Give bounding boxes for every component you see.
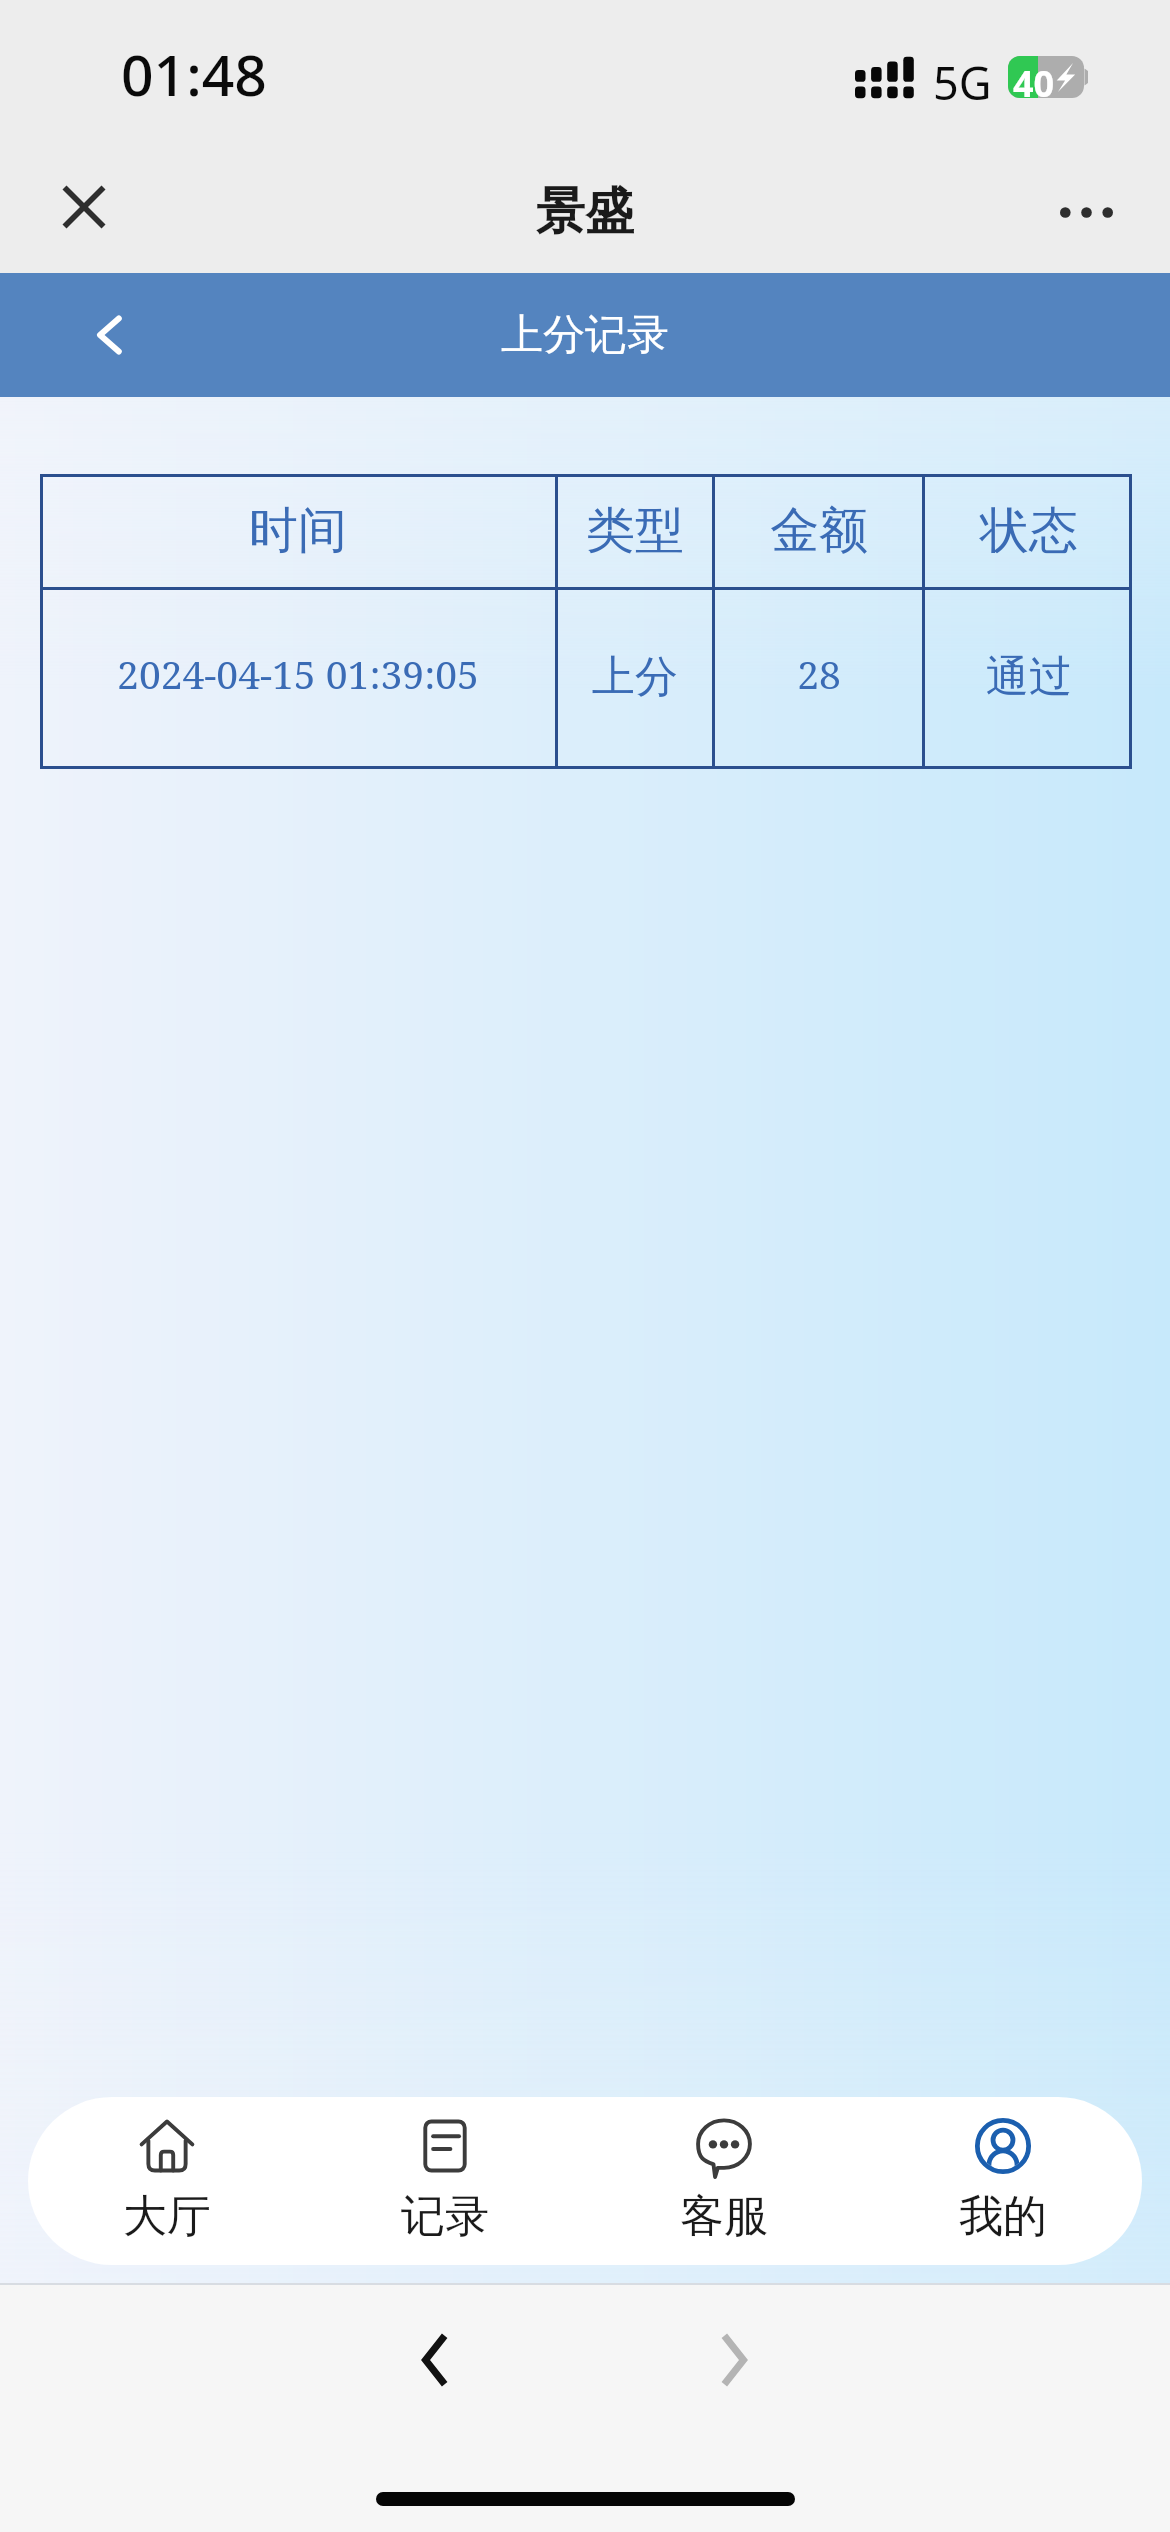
staticText: 2024-04-15 01:39:05 — [117, 647, 479, 700]
button[interactable]: Back — [70, 295, 150, 375]
staticText: 通过 — [986, 650, 1072, 704]
staticText: 上分记录 — [501, 309, 669, 362]
staticText: 时间 — [249, 500, 347, 562]
button[interactable]: 我的 — [863, 2097, 1142, 2265]
button[interactable]: Forward — [695, 2320, 775, 2400]
staticText: 客服 — [680, 2189, 768, 2244]
button[interactable]: 大厅 — [28, 2097, 306, 2265]
staticText: 28 — [797, 647, 841, 700]
button[interactable]: 记录 — [306, 2097, 584, 2265]
button[interactable]: Close — [44, 167, 124, 247]
staticText: 大厅 — [123, 2189, 211, 2244]
staticText: 01:48 — [121, 35, 267, 113]
staticText: 类型 — [586, 500, 684, 562]
button[interactable]: Back — [394, 2320, 474, 2400]
button[interactable]: More options — [1040, 172, 1132, 252]
button[interactable]: 客服 — [584, 2097, 863, 2265]
staticText: 景盛 — [536, 181, 634, 243]
staticText: 金额 — [770, 500, 868, 562]
staticText: 上分 — [592, 650, 678, 704]
staticText: 40 — [1013, 59, 1055, 101]
staticText: 5G — [933, 52, 992, 113]
staticText: 我的 — [959, 2189, 1047, 2244]
staticText: 状态 — [980, 500, 1078, 562]
staticText: 记录 — [401, 2189, 489, 2244]
